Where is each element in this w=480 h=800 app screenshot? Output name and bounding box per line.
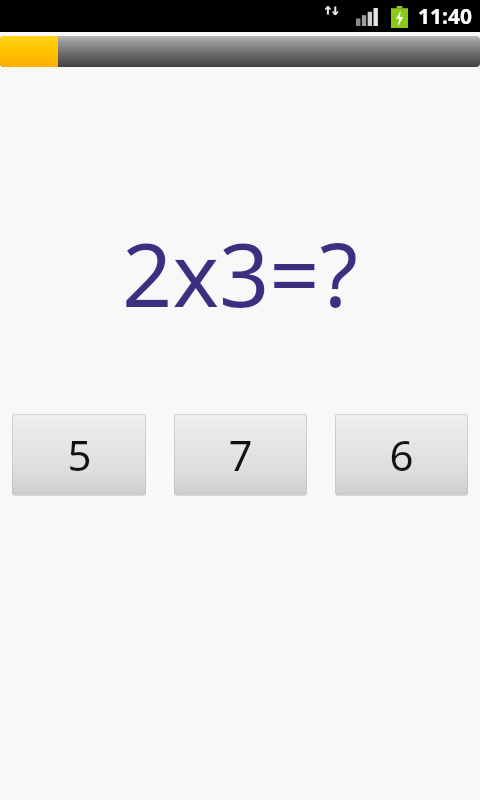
staticText: 2x3=?: [122, 213, 358, 333]
staticText: 5: [67, 426, 92, 483]
staticText: 6: [389, 426, 414, 483]
staticText: 11:40: [418, 2, 472, 31]
button[interactable]: 6: [335, 414, 468, 494]
staticText: 7: [228, 426, 253, 483]
button[interactable]: 5: [12, 414, 146, 494]
button[interactable]: 7: [174, 414, 307, 494]
